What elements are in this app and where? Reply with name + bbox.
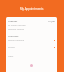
staticText: Thursday — [8, 34, 19, 37]
button[interactable]: Tuesday — [6, 19, 57, 22]
staticText: Dr Sarah Mitchell — [8, 24, 26, 27]
staticText: Physio — [8, 46, 15, 49]
staticText: Later — [8, 55, 14, 58]
staticText: 12 Jun — [48, 19, 55, 22]
staticText: Dental cleaning — [8, 39, 25, 42]
staticText: Tuesday — [8, 19, 18, 22]
staticText: General consult — [8, 28, 25, 31]
staticText: My Appointments — [20, 7, 44, 11]
button[interactable]: Thursday — [6, 34, 57, 37]
